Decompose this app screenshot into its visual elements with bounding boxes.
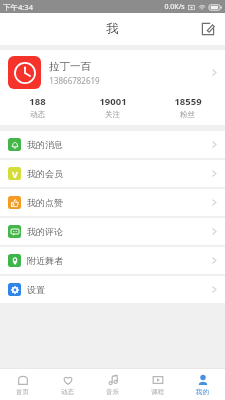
button[interactable]: 18559 <box>150 95 225 119</box>
staticText: 我的评论 <box>27 226 63 237</box>
button[interactable]: 动态 <box>45 369 90 400</box>
button[interactable]: 我的评论 <box>0 218 225 245</box>
button[interactable]: V <box>0 160 225 187</box>
staticText: 188 <box>29 95 46 108</box>
staticText: 附近舞者 <box>27 255 63 266</box>
button[interactable]: 我的 <box>180 369 225 400</box>
staticText: 拉丁一百 <box>49 60 91 73</box>
staticText: 设置 <box>27 284 45 295</box>
button[interactable]: 设置 <box>0 276 225 303</box>
button[interactable]: 我的消息 <box>0 131 225 158</box>
staticText: 动态 <box>30 110 45 119</box>
button[interactable]: Edit profile <box>197 18 219 40</box>
button[interactable]: 课程 <box>135 369 180 400</box>
staticText: 13866782619 <box>49 75 100 86</box>
button[interactable]: 附近舞者 <box>0 247 225 274</box>
staticText: 首页 <box>16 388 29 396</box>
staticText: 我的消息 <box>27 139 63 150</box>
button[interactable]: 音乐 <box>90 369 135 400</box>
button[interactable]: 188 <box>0 95 75 119</box>
staticText: V <box>12 168 18 180</box>
staticText: 我的 <box>196 388 209 396</box>
button[interactable]: 19001 <box>75 95 150 119</box>
button[interactable]: 我的点赞 <box>0 189 225 216</box>
staticText: 音乐 <box>106 388 119 396</box>
staticText: 我的点赞 <box>27 197 63 208</box>
staticText: 0.0K/s <box>164 2 185 12</box>
staticText: 我 <box>106 21 119 37</box>
staticText: 我的会员 <box>27 168 63 179</box>
button[interactable]: 首页 <box>0 369 45 400</box>
staticText: 课程 <box>151 388 164 396</box>
staticText: 关注 <box>105 110 120 119</box>
button[interactable]: 拉丁一百 <box>0 50 225 95</box>
staticText: 19001 <box>99 95 127 108</box>
staticText: 下午4:34 <box>3 2 33 12</box>
staticText: 粉丝 <box>180 110 195 119</box>
staticText: 动态 <box>61 388 74 396</box>
staticText: 18559 <box>174 95 202 108</box>
